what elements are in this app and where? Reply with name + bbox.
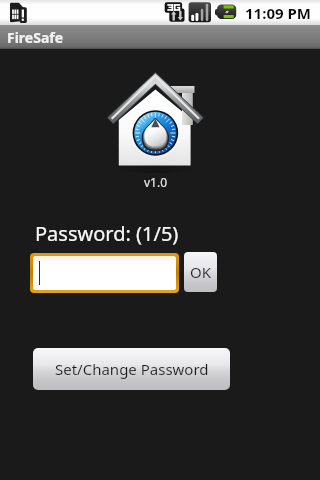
button[interactable]: Password entry field [33, 256, 176, 290]
staticText: Set/Change Password [55, 359, 209, 379]
staticText: 11:09 PM [245, 3, 311, 23]
button[interactable]: Set/Change Password [33, 348, 230, 390]
staticText: v1.0 [144, 174, 168, 190]
button[interactable]: OK [184, 252, 217, 292]
staticText: FireSafe [7, 28, 64, 47]
staticText: Password: (1/5) [35, 220, 179, 247]
staticText: OK [190, 262, 212, 282]
